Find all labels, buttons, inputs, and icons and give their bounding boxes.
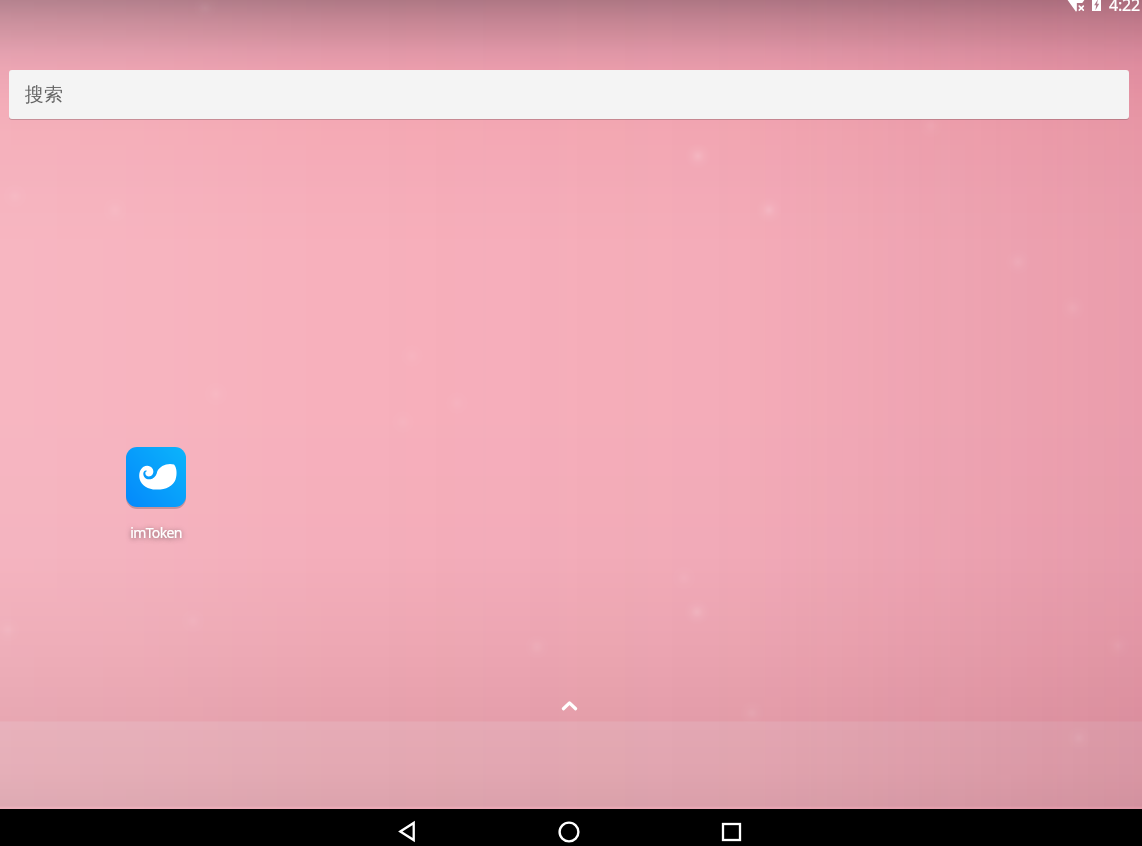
staticText: 搜索: [25, 83, 63, 107]
button[interactable]: 搜索: [9, 70, 1129, 119]
button[interactable]: Recents: [707, 817, 755, 846]
button[interactable]: All apps: [557, 696, 582, 715]
staticText: imToken: [130, 523, 182, 542]
staticText: 4:22: [1109, 0, 1140, 16]
button[interactable]: imToken: [106, 447, 206, 542]
button[interactable]: Back: [383, 817, 431, 846]
button[interactable]: Home: [545, 817, 593, 846]
